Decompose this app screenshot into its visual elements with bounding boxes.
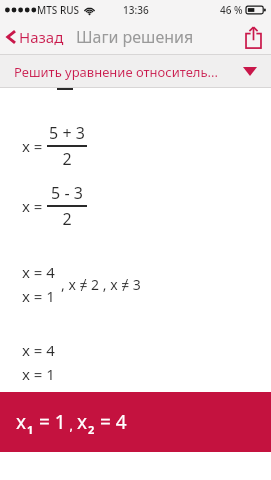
staticText: x = 1 bbox=[22, 364, 55, 384]
staticText: x = 1 bbox=[22, 286, 55, 306]
staticText: 5 + 3 bbox=[49, 122, 85, 144]
staticText: = 4 bbox=[95, 409, 127, 435]
staticText: Шаги решения bbox=[76, 26, 194, 48]
staticText: 2 bbox=[62, 148, 72, 170]
staticText: , x ≠ 2 , x ≠ 3 bbox=[61, 275, 141, 294]
staticText: x bbox=[77, 409, 88, 435]
staticText: x bbox=[16, 409, 27, 435]
staticText: 2 bbox=[88, 422, 95, 437]
staticText: 1 bbox=[27, 422, 34, 437]
button[interactable]: Share bbox=[236, 22, 271, 53]
other: Expand bbox=[243, 67, 257, 76]
staticText: = 1 bbox=[34, 409, 66, 435]
staticText: Назад bbox=[19, 27, 64, 47]
staticText: , bbox=[66, 416, 77, 434]
staticText: MTS RUS bbox=[37, 3, 80, 17]
staticText: 2 bbox=[62, 208, 72, 230]
button[interactable]: Назад bbox=[0, 23, 70, 51]
staticText: x = bbox=[22, 196, 43, 216]
staticText: x = bbox=[22, 136, 43, 156]
button[interactable]: Решить уравнение относитель... bbox=[0, 55, 271, 88]
staticText: 5 - 3 bbox=[51, 182, 83, 204]
staticText: x = 4 bbox=[22, 262, 55, 282]
staticText: x = 4 bbox=[22, 340, 55, 360]
staticText: Решить уравнение относитель... bbox=[14, 63, 218, 81]
button[interactable]: x bbox=[0, 392, 271, 452]
staticText: 46 % bbox=[220, 3, 243, 17]
staticText: 13:36 bbox=[123, 3, 149, 17]
